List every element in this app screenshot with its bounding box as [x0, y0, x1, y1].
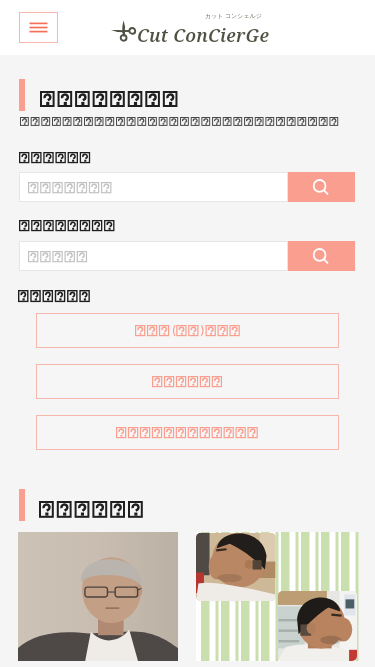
button[interactable]: Customer photo [18, 532, 178, 661]
button[interactable]: Search [288, 241, 355, 271]
button[interactable] [36, 364, 339, 399]
button[interactable] [19, 172, 288, 202]
button[interactable]: Search [288, 172, 355, 202]
button[interactable]: Menu [19, 12, 58, 43]
staticText: カット コンシェルジ [205, 12, 262, 20]
button[interactable] [36, 415, 339, 450]
button[interactable] [36, 313, 339, 348]
staticText: Cut ConCierGe [137, 23, 270, 48]
button[interactable]: Haircut photo collage [196, 532, 357, 661]
button[interactable] [19, 241, 288, 271]
